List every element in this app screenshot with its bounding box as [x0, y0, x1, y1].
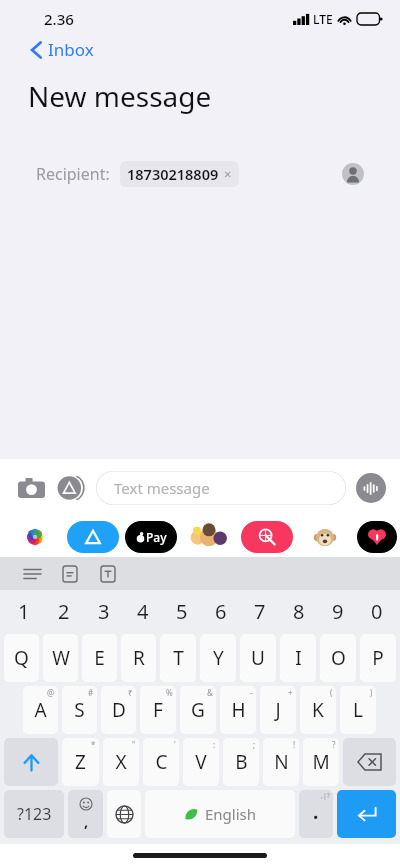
staticText: M: [312, 749, 330, 775]
staticText: X: [115, 749, 127, 775]
staticText: ₹: [128, 687, 133, 698]
button[interactable]: Inbox: [30, 38, 94, 61]
button[interactable]: W: [43, 634, 78, 682]
button[interactable]: App: [241, 521, 293, 553]
staticText: Pay: [146, 529, 167, 545]
staticText: New message: [28, 77, 212, 115]
button[interactable]: Camera: [14, 471, 48, 505]
staticText: ;: [253, 739, 256, 750]
staticText: ×: [224, 165, 232, 183]
staticText: ?: [332, 739, 336, 750]
button[interactable]: 8: [279, 590, 318, 632]
staticText: ": [132, 739, 136, 750]
button[interactable]: 3: [84, 590, 123, 632]
staticText: ?123: [17, 803, 52, 825]
button[interactable]: Clipboard: [56, 560, 84, 588]
button[interactable]: .: [299, 790, 333, 838]
staticText: A: [34, 697, 47, 723]
button[interactable]: Text message: [96, 471, 346, 505]
button[interactable]: R: [121, 634, 156, 682]
staticText: Y: [213, 645, 224, 671]
button[interactable]: 6: [201, 590, 240, 632]
staticText: 0: [371, 598, 383, 625]
button[interactable]: J: [260, 686, 296, 734]
button[interactable]: Y: [200, 634, 236, 682]
button[interactable]: English: [145, 790, 295, 838]
button[interactable]: 18730218809: [120, 161, 239, 187]
staticText: 2: [58, 598, 70, 625]
staticText: F: [153, 697, 163, 723]
button[interactable]: 0: [357, 590, 396, 632]
button[interactable]: H: [220, 686, 256, 734]
button[interactable]: E: [82, 634, 117, 682]
staticText: 6: [215, 598, 227, 625]
button[interactable]: G: [180, 686, 216, 734]
button[interactable]: V: [183, 738, 219, 786]
staticText: 2.36: [44, 9, 74, 29]
staticText: :: [213, 739, 216, 750]
button[interactable]: Send: [337, 790, 396, 838]
staticText: Z: [75, 749, 86, 775]
button[interactable]: Shift: [4, 738, 58, 786]
staticText: C: [155, 749, 168, 775]
button[interactable]: Emoji: [68, 790, 103, 838]
button[interactable]: P: [360, 634, 396, 682]
staticText: ': [174, 739, 176, 750]
button[interactable]: M: [303, 738, 339, 786]
button[interactable]: App: [67, 521, 119, 553]
button[interactable]: 5: [162, 590, 201, 632]
staticText: %: [166, 687, 173, 698]
button[interactable]: App: [9, 521, 61, 553]
button[interactable]: Backspace: [343, 738, 396, 786]
button[interactable]: B: [223, 738, 259, 786]
button[interactable]: Z: [62, 738, 99, 786]
button[interactable]: 7: [240, 590, 279, 632]
button[interactable]: App: [125, 521, 177, 553]
button[interactable]: S: [62, 686, 97, 734]
button[interactable]: O: [320, 634, 356, 682]
button[interactable]: X: [103, 738, 139, 786]
button[interactable]: F: [140, 686, 176, 734]
staticText: R: [133, 645, 145, 671]
button[interactable]: D: [101, 686, 136, 734]
button[interactable]: N: [263, 738, 299, 786]
staticText: U: [251, 645, 265, 671]
staticText: G: [191, 697, 205, 723]
staticText: English: [205, 804, 257, 824]
button[interactable]: K: [300, 686, 336, 734]
button[interactable]: Change language: [107, 790, 141, 838]
staticText: *: [91, 739, 96, 750]
button[interactable]: App: [299, 521, 351, 553]
staticText: V: [195, 749, 207, 775]
staticText: S: [74, 697, 85, 723]
button[interactable]: C: [143, 738, 179, 786]
button[interactable]: I: [280, 634, 316, 682]
button[interactable]: 4: [123, 590, 162, 632]
staticText: 5: [176, 598, 188, 625]
button[interactable]: App Store: [56, 473, 86, 503]
button[interactable]: App: [183, 521, 235, 553]
button[interactable]: Add contact: [342, 163, 364, 185]
button[interactable]: U: [240, 634, 276, 682]
button[interactable]: Text format: [94, 560, 122, 588]
button[interactable]: A: [23, 686, 58, 734]
staticText: Inbox: [48, 38, 94, 61]
staticText: 1: [18, 598, 30, 625]
button[interactable]: ?123: [4, 790, 64, 838]
button[interactable]: Menu: [18, 560, 46, 588]
button[interactable]: App: [357, 521, 397, 553]
staticText: 3: [98, 598, 110, 625]
button[interactable]: 1: [4, 590, 44, 632]
staticText: O: [331, 645, 346, 671]
staticText: @: [47, 687, 55, 698]
staticText: 7: [254, 598, 266, 625]
button[interactable]: Audio message: [356, 473, 386, 503]
button[interactable]: L: [340, 686, 376, 734]
button[interactable]: T: [160, 634, 196, 682]
staticText: Text message: [114, 478, 210, 498]
button[interactable]: 2: [44, 590, 84, 632]
button[interactable]: Q: [4, 634, 39, 682]
button[interactable]: 9: [318, 590, 357, 632]
staticText: +: [288, 687, 293, 698]
staticText: W: [52, 645, 70, 671]
